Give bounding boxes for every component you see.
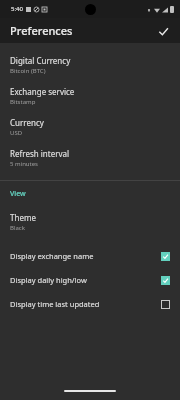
staticText: Theme bbox=[10, 212, 36, 223]
staticText: USD bbox=[10, 129, 23, 137]
staticText: 5:40 bbox=[11, 5, 23, 13]
staticText: Black bbox=[10, 224, 25, 232]
staticText: Preferences bbox=[10, 23, 73, 38]
button[interactable]: Display daily high/low bbox=[0, 268, 180, 292]
button[interactable]: Display exchange name bbox=[0, 244, 180, 268]
button[interactable]: Currency bbox=[0, 112, 180, 143]
staticText: 5 minutes bbox=[10, 160, 38, 168]
staticText: Currency bbox=[10, 117, 44, 128]
staticText: Display daily high/low bbox=[10, 275, 161, 285]
staticText: Refresh interval bbox=[10, 148, 70, 159]
staticText: Bitstamp bbox=[10, 98, 36, 106]
staticText: Exchange service bbox=[10, 86, 75, 97]
button[interactable]: Display time last updated bbox=[0, 292, 180, 316]
button[interactable]: Refresh interval bbox=[0, 143, 180, 174]
staticText: Display time last updated bbox=[10, 299, 161, 309]
staticText: Display exchange name bbox=[10, 251, 161, 261]
button[interactable]: Done bbox=[154, 22, 172, 40]
staticText: Digital Currency bbox=[10, 55, 71, 66]
staticText: View bbox=[10, 189, 26, 199]
button[interactable]: Exchange service bbox=[0, 81, 180, 112]
button[interactable]: Digital Currency bbox=[0, 50, 180, 81]
staticText: Bitcoin (BTC) bbox=[10, 67, 46, 75]
button[interactable]: Theme bbox=[0, 207, 180, 238]
